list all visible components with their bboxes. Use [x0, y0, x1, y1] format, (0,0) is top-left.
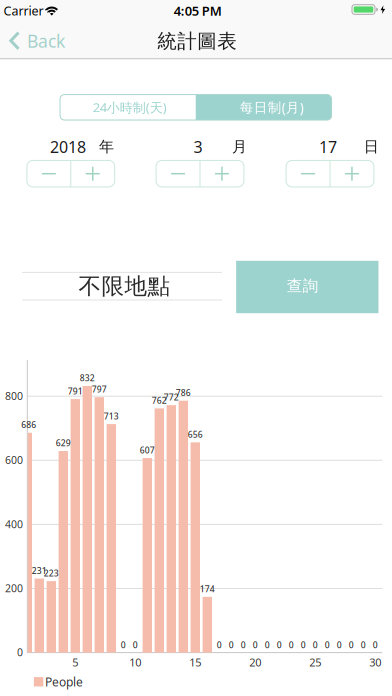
button[interactable]: 每日制(月): [196, 94, 332, 120]
staticText: 772: [164, 391, 179, 403]
staticText: 0: [301, 639, 306, 651]
button[interactable]: 選擇地點: [22, 272, 222, 300]
staticText: 200: [5, 581, 23, 595]
staticText: 不限地點: [78, 272, 170, 300]
staticText: 20: [249, 655, 261, 670]
staticText: 762: [152, 394, 167, 406]
staticText: 0: [325, 639, 330, 651]
staticText: 0: [373, 639, 378, 651]
staticText: 0: [253, 639, 258, 651]
staticText: 0: [17, 645, 23, 659]
staticText: 800: [5, 389, 23, 403]
staticText: 0: [133, 639, 138, 651]
staticText: 0: [229, 639, 234, 651]
staticText: 15: [189, 655, 201, 670]
staticText: 查詢: [287, 276, 319, 295]
staticText: 223: [44, 567, 59, 579]
staticText: 600: [5, 453, 23, 467]
staticText: Back: [27, 29, 65, 53]
staticText: 0: [349, 639, 354, 651]
staticText: 797: [92, 383, 107, 395]
button[interactable]: Decrease day: [286, 160, 330, 187]
staticText: 4:05 PM: [174, 2, 222, 19]
staticText: 24小時制(天): [93, 98, 167, 116]
staticText: Carrier: [3, 2, 43, 19]
staticText: 231: [32, 565, 47, 576]
button[interactable]: Increase month: [200, 160, 244, 187]
staticText: 400: [5, 517, 23, 531]
staticText: 0: [361, 639, 366, 651]
staticText: 607: [140, 444, 155, 456]
staticText: 786: [176, 387, 191, 398]
staticText: 年: [99, 137, 114, 156]
staticText: 30: [369, 655, 381, 670]
staticText: 656: [188, 428, 203, 440]
staticText: 0: [313, 639, 318, 651]
staticText: People: [45, 674, 83, 690]
staticText: 月: [232, 137, 247, 156]
button[interactable]: Decrease month: [156, 160, 200, 187]
staticText: 174: [200, 583, 215, 595]
button[interactable]: 24小時制(天): [60, 94, 196, 120]
staticText: 日: [364, 137, 379, 156]
staticText: 2018: [50, 136, 86, 158]
staticText: 791: [68, 385, 83, 397]
staticText: 0: [241, 639, 246, 651]
staticText: 5: [72, 655, 78, 670]
button[interactable]: Back: [9, 25, 65, 57]
button[interactable]: 查詢: [236, 261, 378, 313]
staticText: 10: [129, 655, 141, 670]
staticText: 25: [309, 655, 321, 670]
staticText: 0: [217, 639, 222, 651]
staticText: 3: [193, 136, 202, 158]
staticText: 713: [104, 410, 119, 422]
staticText: 17: [319, 136, 337, 158]
button[interactable]: Increase year: [71, 160, 115, 187]
staticText: 832: [80, 372, 95, 384]
button[interactable]: Decrease year: [27, 160, 71, 187]
staticText: 0: [265, 639, 270, 651]
staticText: 每日制(月): [240, 98, 304, 116]
staticText: 686: [21, 419, 36, 431]
staticText: 629: [56, 437, 71, 449]
button[interactable]: Increase day: [330, 160, 374, 187]
staticText: 0: [289, 639, 294, 651]
staticText: 0: [121, 639, 126, 651]
staticText: 統計圖表: [157, 29, 237, 53]
staticText: 0: [277, 639, 282, 651]
staticText: 0: [337, 639, 342, 651]
